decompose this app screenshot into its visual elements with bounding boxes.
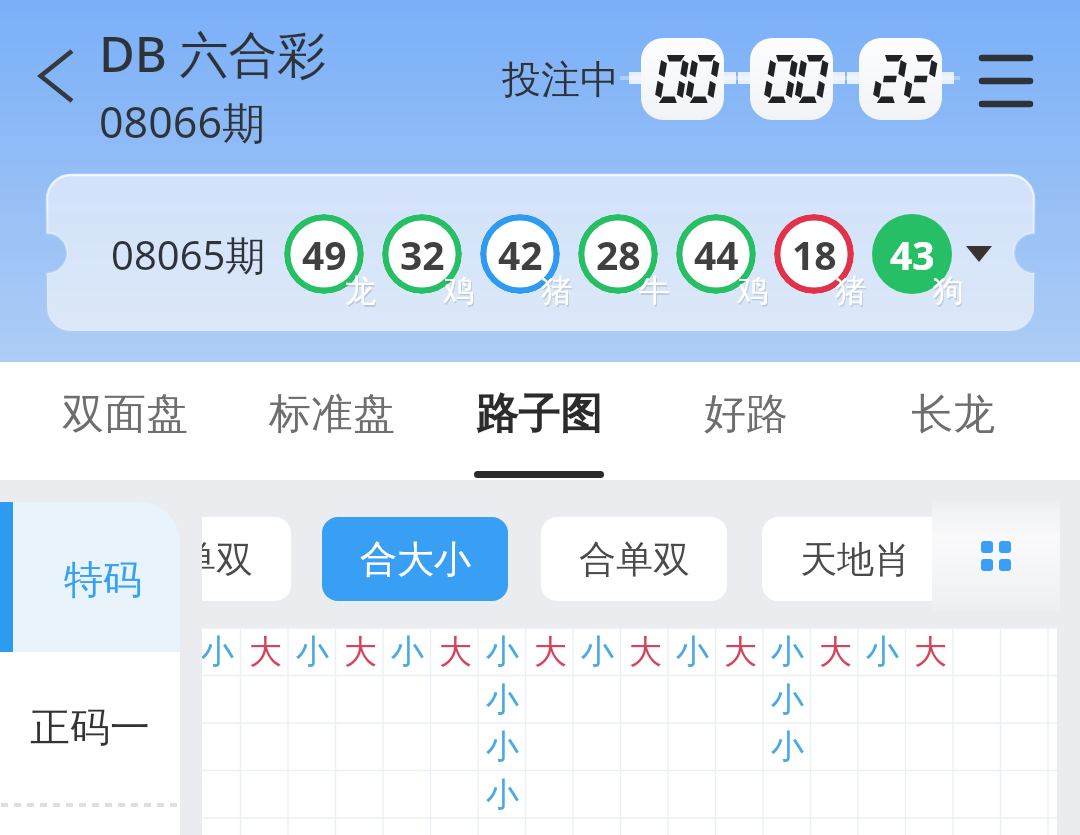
staticText: 猪 <box>836 273 867 312</box>
button[interactable]: Menu <box>970 45 1042 117</box>
staticText: 鸡 <box>737 271 768 310</box>
staticText: 好路 <box>704 388 788 441</box>
staticText: 长龙 <box>911 388 995 441</box>
staticText: 小 <box>486 679 519 721</box>
staticText: 大 <box>439 631 472 673</box>
staticText: 43 <box>890 228 935 281</box>
staticText: 牛 <box>640 273 671 312</box>
staticText: 大 <box>629 631 662 673</box>
staticText: 标准盘 <box>269 388 395 441</box>
staticText: 小 <box>296 631 329 673</box>
staticText: 08065期 <box>111 227 266 282</box>
staticText: 龙 <box>346 273 377 312</box>
staticText: 猪 <box>541 271 572 310</box>
staticText: 大 <box>819 631 852 673</box>
staticText: 合单双 <box>579 536 690 583</box>
staticText: 鸡 <box>738 273 769 312</box>
staticText: 小 <box>202 631 234 673</box>
staticText: 鸡 <box>443 271 474 310</box>
button[interactable]: 特码 <box>0 502 180 652</box>
button[interactable]: 长龙 <box>849 362 1057 480</box>
staticText: 18 <box>792 228 837 281</box>
staticText: 44 <box>694 228 739 281</box>
staticText: 路子图 <box>476 388 602 441</box>
staticText: 小 <box>771 679 804 721</box>
staticText: 牛 <box>639 271 670 310</box>
staticText: 猪 <box>542 273 573 312</box>
button[interactable]: 标准盘 <box>228 362 436 480</box>
staticText: 08066期 <box>99 92 265 151</box>
button[interactable]: 天地肖 <box>762 517 948 601</box>
staticText: 49 <box>302 228 347 281</box>
staticText: 小 <box>391 631 424 673</box>
staticText: 猪 <box>835 271 866 310</box>
button[interactable]: 正码一 <box>0 652 180 801</box>
button[interactable]: More filter <box>983 517 1040 601</box>
staticText: 32 <box>400 228 445 281</box>
staticText: 28 <box>596 228 641 281</box>
staticText: 小 <box>866 631 899 673</box>
staticText: 双面盘 <box>62 388 188 441</box>
button[interactable]: 合单双 <box>541 517 727 601</box>
button[interactable]: More options <box>932 502 1060 610</box>
staticText: 狗 <box>933 271 964 310</box>
staticText: 单双 <box>202 536 253 583</box>
button[interactable]: 好路 <box>642 362 850 480</box>
staticText: 合大小 <box>360 536 471 583</box>
staticText: 大 <box>724 631 757 673</box>
staticText: 小 <box>676 631 709 673</box>
staticText: 大 <box>534 631 567 673</box>
staticText: 小 <box>771 631 804 673</box>
staticText: 小 <box>581 631 614 673</box>
staticText: 小 <box>486 631 519 673</box>
staticText: 小 <box>771 726 804 768</box>
staticText: 狗 <box>934 273 965 312</box>
staticText: 天地肖 <box>800 536 911 583</box>
button[interactable]: 单双 <box>202 517 291 601</box>
staticText: 小 <box>486 726 519 768</box>
staticText: 特码 <box>64 555 142 604</box>
button[interactable]: Back <box>24 44 88 108</box>
staticText: 龙 <box>345 271 376 310</box>
staticText: 正码一 <box>30 702 150 752</box>
staticText: 鸡 <box>444 273 475 312</box>
staticText: 投注中 <box>502 55 619 104</box>
staticText: 大 <box>344 631 377 673</box>
staticText: 小 <box>486 774 519 816</box>
staticText: 大 <box>249 631 282 673</box>
button[interactable]: 路子图 <box>435 362 643 480</box>
staticText: 大 <box>914 631 947 673</box>
staticText: DB 六合彩 <box>99 20 327 87</box>
staticText: 42 <box>498 228 543 281</box>
button[interactable]: 合大小 <box>322 517 508 601</box>
button[interactable]: 双面盘 <box>21 362 229 480</box>
